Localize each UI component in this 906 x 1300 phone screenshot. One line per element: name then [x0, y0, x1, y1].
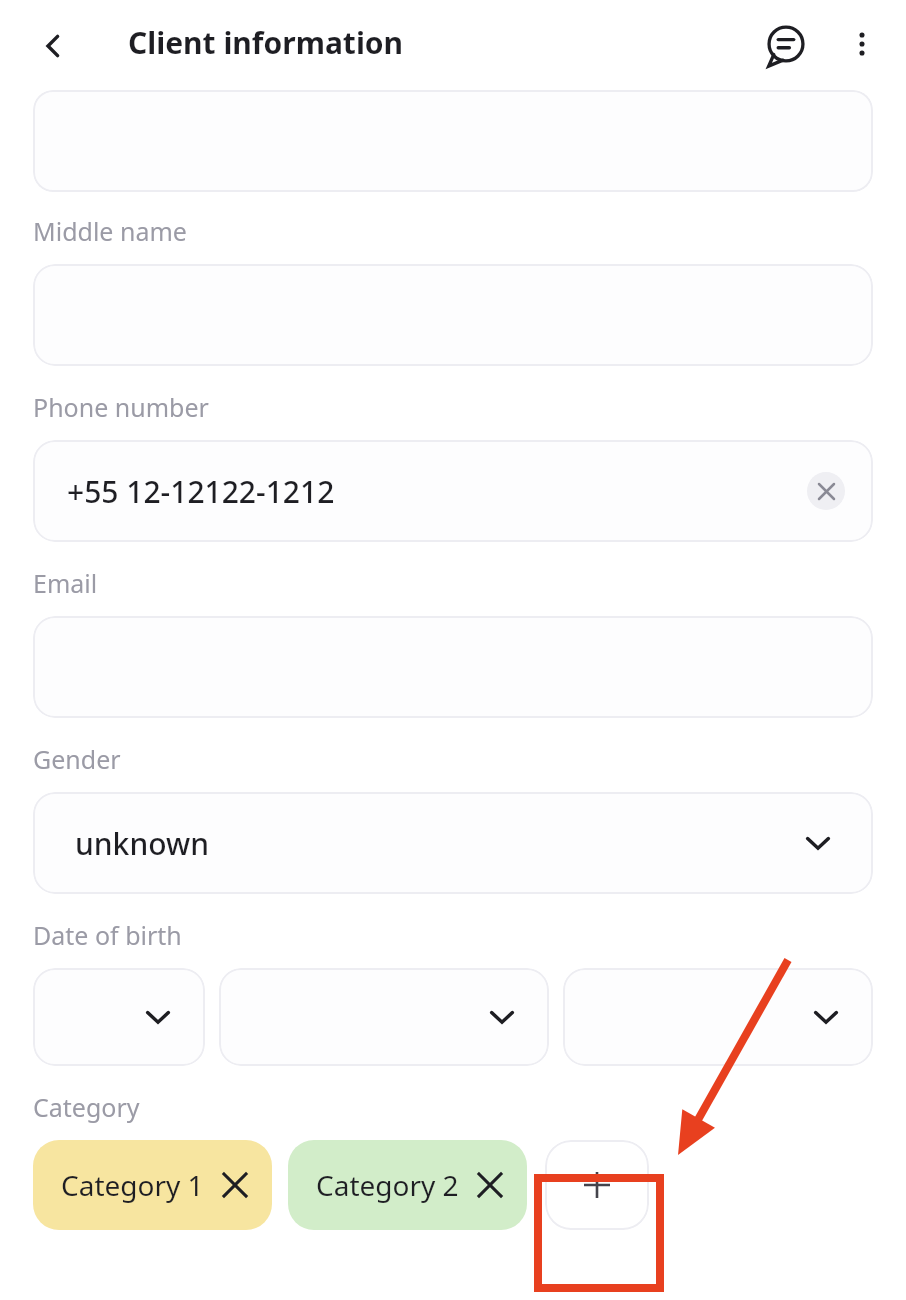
staticText: Client information	[128, 22, 404, 63]
button[interactable]: Category 2	[288, 1140, 527, 1230]
button[interactable]	[33, 90, 873, 192]
button[interactable]: More options	[830, 12, 894, 76]
staticText: +55 12-12122-1212	[67, 471, 335, 512]
staticText: Category 1	[61, 1166, 204, 1204]
button[interactable]	[33, 616, 873, 718]
button[interactable]	[33, 264, 873, 366]
staticText: Category 2	[316, 1166, 459, 1204]
button[interactable]: Category 1	[33, 1140, 272, 1230]
staticText: Date of birth	[33, 918, 182, 952]
button[interactable]: Select date part	[33, 968, 205, 1066]
button[interactable]: Select date part	[219, 968, 549, 1066]
button[interactable]: +55 12-12122-1212	[33, 440, 873, 542]
button[interactable]: Clear phone number	[807, 472, 845, 510]
staticText: Gender	[33, 742, 121, 776]
button[interactable]: Add category	[545, 1140, 649, 1230]
button[interactable]: unknown	[33, 792, 873, 894]
staticText: Category	[33, 1090, 140, 1124]
staticText: unknown	[75, 823, 209, 864]
button[interactable]: Notes	[752, 12, 820, 80]
staticText: Email	[33, 566, 98, 600]
staticText: Phone number	[33, 390, 209, 424]
button[interactable]: Select date part	[563, 968, 873, 1066]
button[interactable]: Back	[22, 14, 86, 78]
staticText: Middle name	[33, 214, 187, 248]
